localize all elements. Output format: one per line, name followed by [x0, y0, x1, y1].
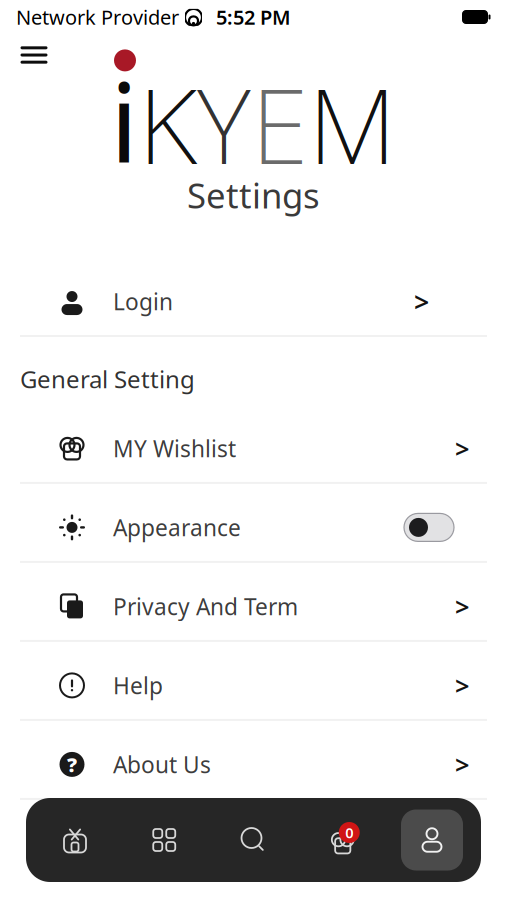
button[interactable]: Profile [401, 809, 463, 870]
staticText: General Setting [20, 363, 195, 395]
staticText: MY Wishlist [113, 433, 236, 463]
staticText: 5:52 PM [216, 4, 291, 30]
staticText: > [414, 284, 429, 319]
staticText: > [455, 432, 469, 465]
staticText: 0 [345, 823, 353, 842]
staticText: Settings [187, 172, 320, 218]
button[interactable]: Help [20, 650, 487, 721]
button[interactable]: Appearance [20, 492, 487, 563]
staticText: i [110, 47, 138, 193]
button[interactable]: Search [222, 809, 284, 871]
staticText: E [251, 54, 308, 193]
staticText: > [455, 590, 469, 623]
button[interactable]: Menu [12, 38, 56, 72]
staticText: > [455, 748, 469, 781]
button[interactable]: Login [20, 266, 487, 337]
staticText: Appearance [113, 512, 241, 542]
button[interactable]: Home [44, 809, 106, 871]
button[interactable]: Wishlist [312, 809, 374, 871]
button[interactable]: Categories [133, 809, 195, 871]
staticText: K [138, 54, 197, 193]
staticText: Y [197, 54, 251, 193]
button[interactable]: MY Wishlist [20, 413, 487, 484]
staticText: Help [113, 670, 163, 700]
staticText: M [308, 54, 397, 193]
button[interactable]: ? [20, 729, 487, 800]
staticText: About Us [113, 749, 211, 779]
button[interactable]: Privacy And Term [20, 571, 487, 642]
staticText: Login [113, 286, 173, 317]
staticText: Privacy And Term [113, 591, 298, 621]
staticText: ? [67, 751, 77, 778]
staticText: > [455, 669, 469, 702]
staticText: Network Provider [16, 4, 179, 30]
